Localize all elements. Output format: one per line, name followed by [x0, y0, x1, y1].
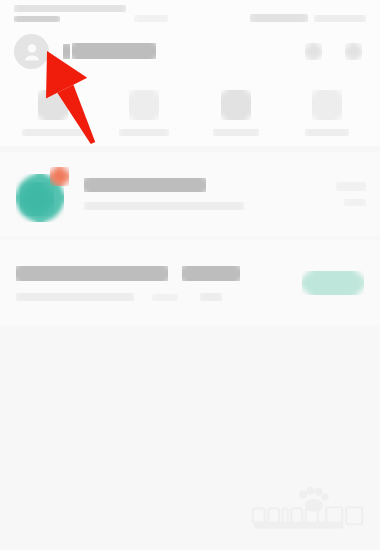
- button[interactable]: Open: [302, 271, 364, 295]
- button[interactable]: [283, 88, 371, 138]
- button[interactable]: Profile avatar: [14, 34, 49, 69]
- button[interactable]: Search: [300, 38, 326, 64]
- button[interactable]: Open: [0, 240, 380, 326]
- button[interactable]: [63, 38, 156, 64]
- button[interactable]: [192, 88, 280, 138]
- button[interactable]: [100, 88, 188, 138]
- button[interactable]: Settings: [340, 38, 366, 64]
- button[interactable]: [9, 88, 97, 138]
- button[interactable]: [0, 152, 380, 236]
